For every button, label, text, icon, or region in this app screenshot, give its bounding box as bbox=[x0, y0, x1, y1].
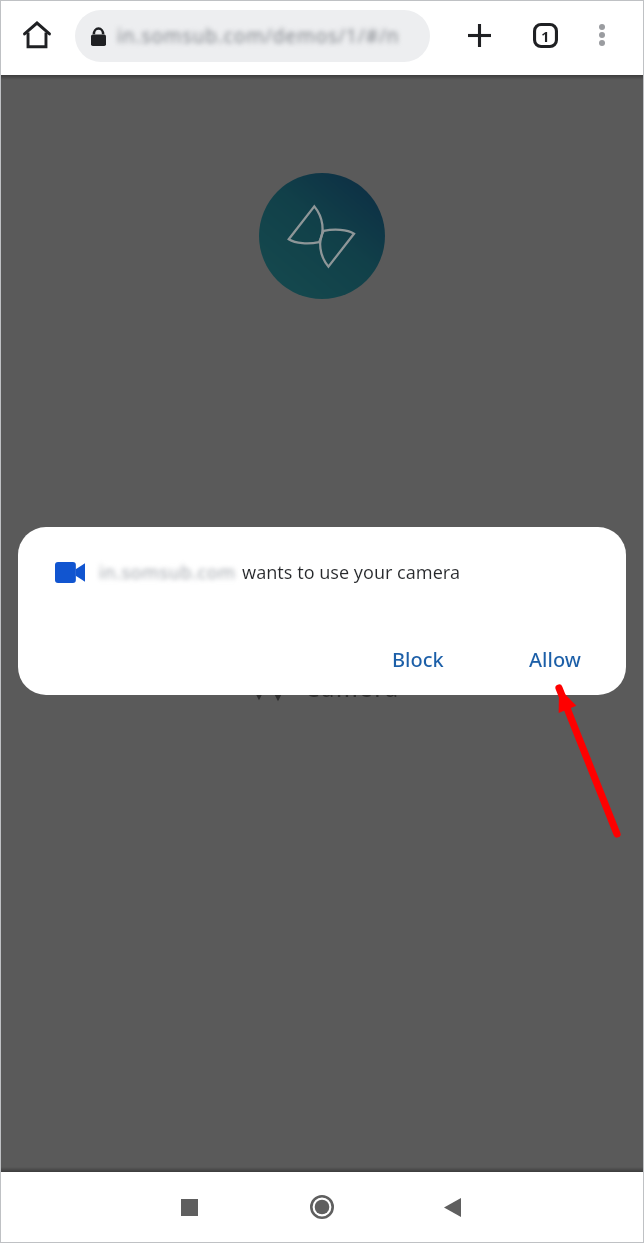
button[interactable]: Tabs bbox=[522, 12, 568, 58]
button[interactable]: Block bbox=[378, 637, 458, 682]
button[interactable]: New tab bbox=[456, 12, 502, 58]
staticText: wants to use your camera bbox=[242, 560, 461, 585]
staticText: in.somsub.com/demos/1/#/n bbox=[117, 23, 400, 49]
button[interactable]: Home bbox=[14, 12, 60, 58]
staticText: Camera bbox=[305, 672, 400, 703]
button[interactable]: More options bbox=[579, 12, 625, 58]
staticText: in.somsub.com bbox=[99, 560, 236, 585]
button[interactable]: Back bbox=[424, 1179, 480, 1235]
staticText: 1 bbox=[541, 26, 550, 46]
button[interactable]: Recent apps bbox=[161, 1179, 217, 1235]
button[interactable]: Home bbox=[294, 1179, 350, 1235]
button[interactable]: Allow bbox=[515, 637, 595, 682]
button[interactable]: in.somsub.com/demos/1/#/n bbox=[75, 10, 430, 62]
staticText: Allow bbox=[529, 646, 581, 673]
staticText: Block bbox=[392, 646, 444, 673]
